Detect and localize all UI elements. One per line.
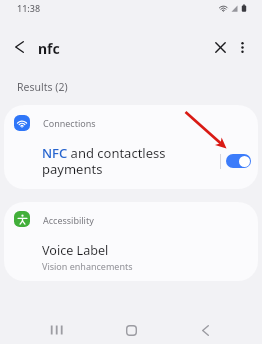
staticText: NFC and contactless payments	[42, 144, 182, 178]
button[interactable]: Clear search	[206, 33, 234, 61]
button[interactable]: More options	[228, 33, 256, 61]
staticText: 11:38	[17, 2, 41, 14]
button[interactable]: Home	[113, 313, 149, 344]
button[interactable]: Accessibility	[4, 202, 258, 281]
staticText: Results (2)	[17, 80, 68, 94]
button[interactable]: Recent apps	[39, 313, 75, 344]
staticText: nfc	[38, 39, 60, 58]
staticText: Vision enhancements	[42, 260, 133, 272]
staticText: Accessibility	[43, 214, 94, 226]
button[interactable]: Back	[5, 33, 33, 61]
staticText: Connections	[43, 117, 96, 129]
staticText: Voice Label	[42, 242, 109, 259]
button[interactable]: NFC and contactless payments toggle	[222, 147, 254, 175]
button[interactable]: Back	[187, 313, 223, 344]
button[interactable]: Connections	[4, 105, 258, 189]
